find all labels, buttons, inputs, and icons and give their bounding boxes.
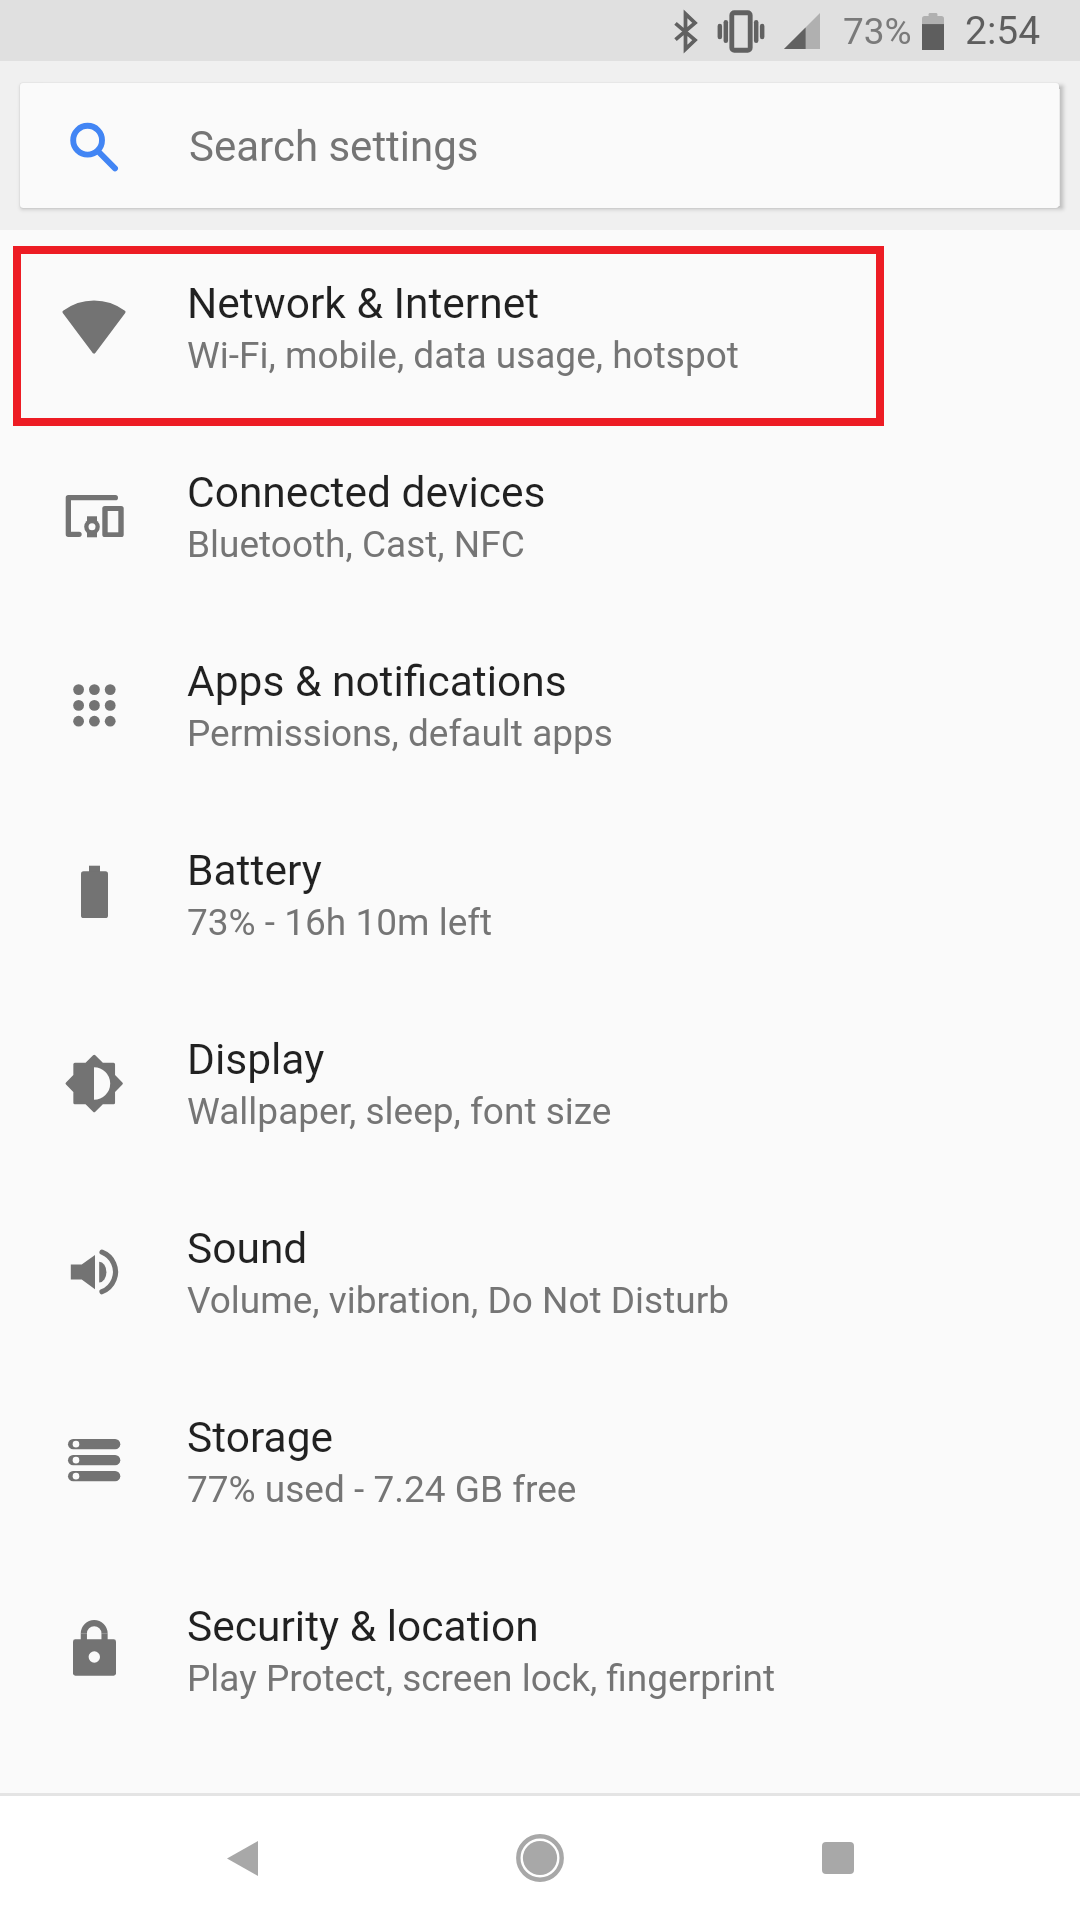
button[interactable]: Network & Internet [0, 232, 1080, 421]
button[interactable]: Display [0, 988, 1080, 1177]
staticText: 77% used - 7.24 GB free [187, 1469, 577, 1511]
button[interactable]: Back [182, 1796, 302, 1920]
button[interactable]: Search settings [20, 83, 1059, 208]
button[interactable]: Recent apps [778, 1796, 898, 1920]
staticText: 73% - 16h 10m left [187, 902, 493, 944]
button[interactable]: Security & location [0, 1555, 1080, 1744]
staticText: Apps & notifications [187, 658, 567, 706]
staticText: Volume, vibration, Do Not Disturb [187, 1280, 730, 1322]
button[interactable]: Storage [0, 1366, 1080, 1555]
button[interactable]: Home [480, 1796, 600, 1920]
staticText: Display [187, 1036, 325, 1084]
button[interactable]: Sound [0, 1177, 1080, 1366]
staticText: Permissions, default apps [187, 713, 613, 755]
button[interactable]: Battery [0, 799, 1080, 988]
staticText: Battery [187, 847, 322, 895]
button[interactable]: Apps & notifications [0, 610, 1080, 799]
staticText: Bluetooth, Cast, NFC [187, 524, 525, 566]
staticText: Storage [187, 1414, 334, 1462]
staticText: Wi-Fi, mobile, data usage, hotspot [187, 335, 739, 377]
staticText: Wallpaper, sleep, font size [187, 1091, 612, 1133]
staticText: Search settings [189, 122, 479, 171]
staticText: 73% [843, 10, 912, 53]
button[interactable]: Connected devices [0, 421, 1080, 610]
staticText: Security & location [187, 1603, 539, 1651]
staticText: Connected devices [187, 469, 546, 517]
staticText: Sound [187, 1225, 308, 1273]
staticText: 2:54 [965, 8, 1041, 54]
staticText: Play Protect, screen lock, fingerprint [187, 1658, 776, 1700]
staticText: Network & Internet [187, 280, 540, 328]
